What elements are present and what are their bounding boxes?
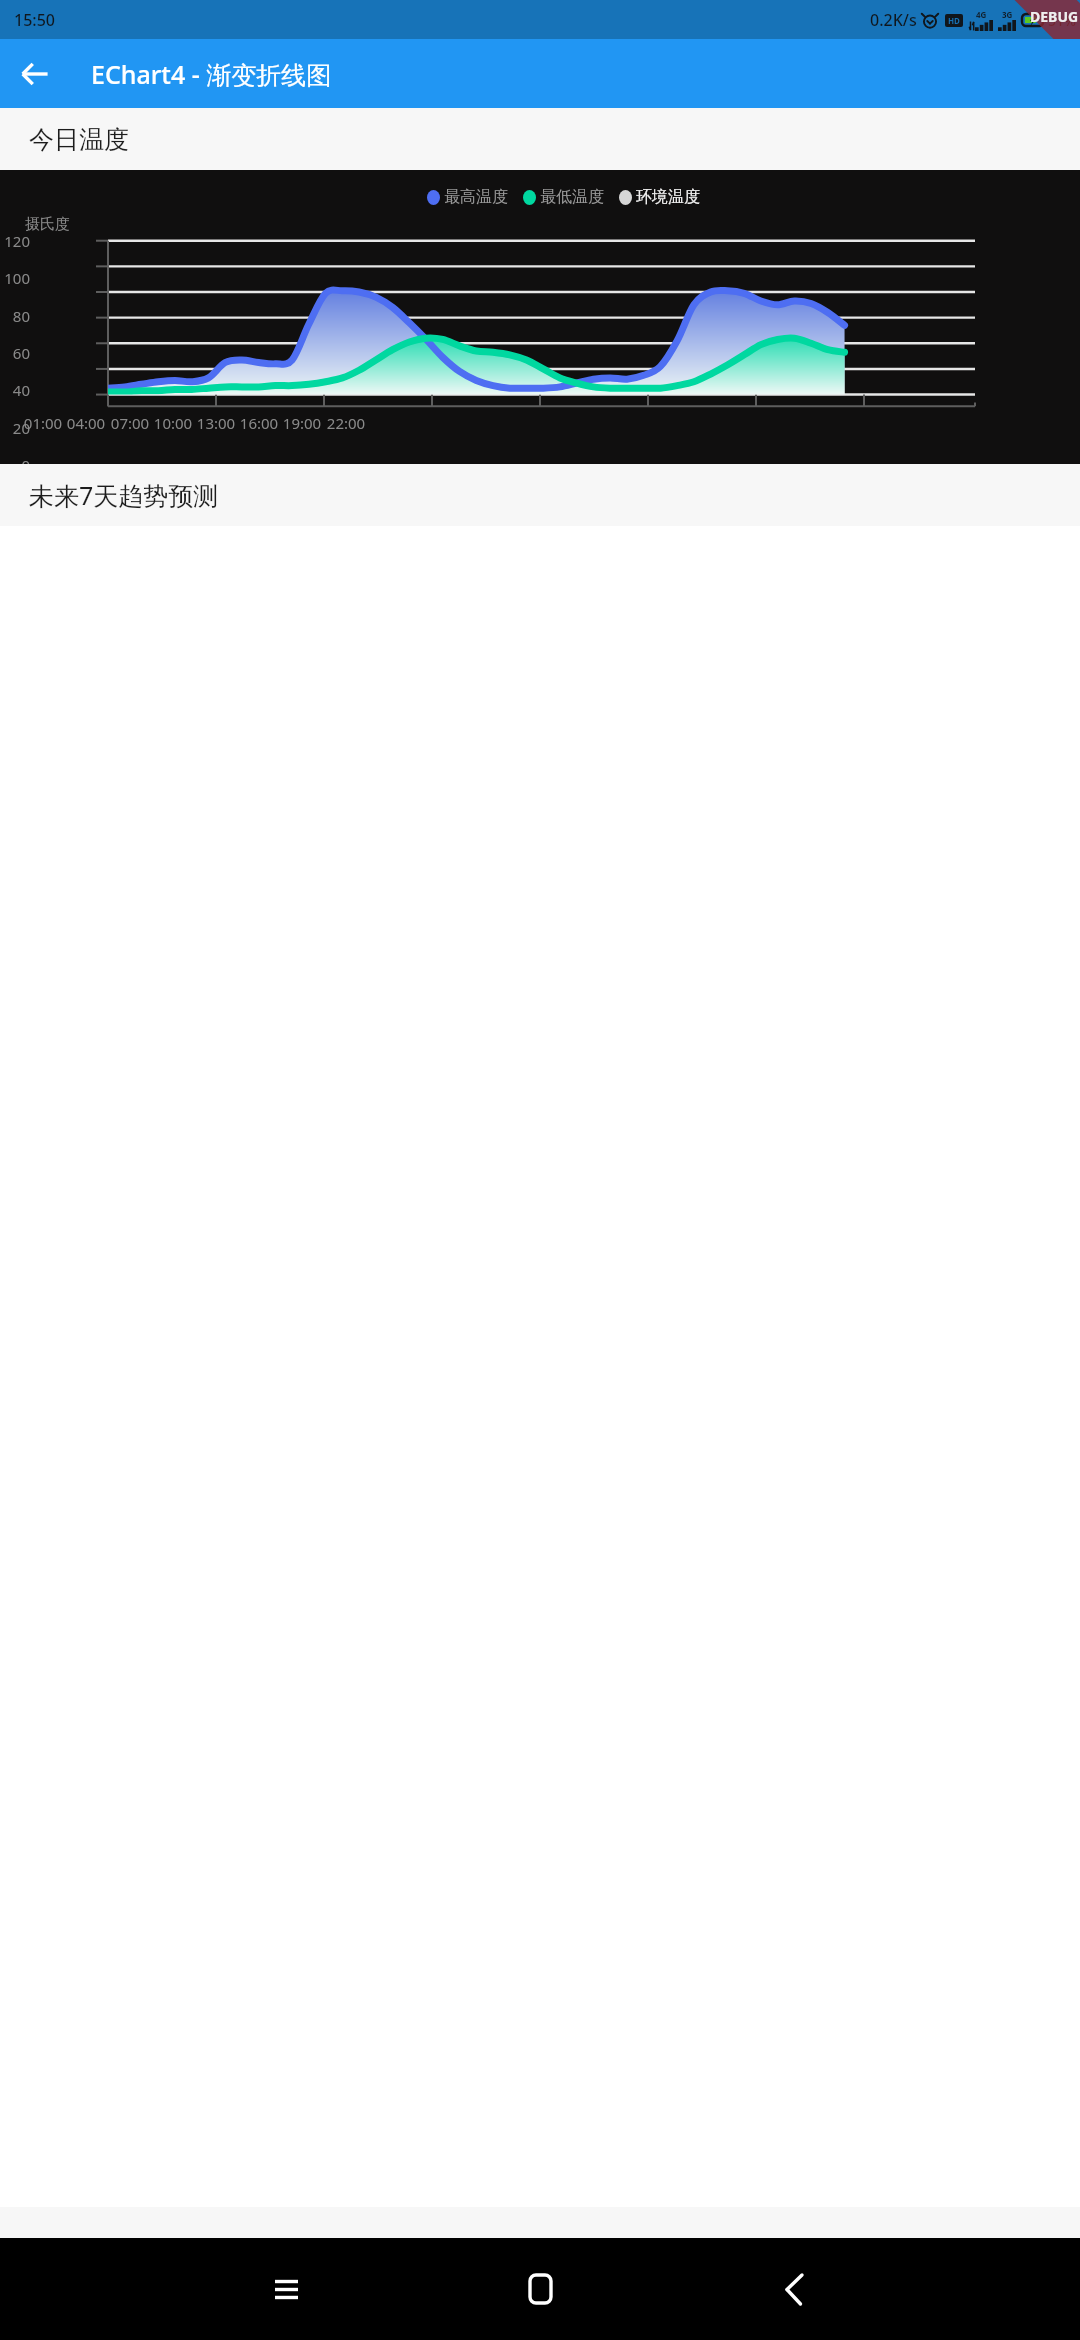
staticText: 未来7天趋势预测 bbox=[29, 478, 219, 512]
staticText: DEBUG bbox=[1030, 7, 1079, 26]
button[interactable]: Recents bbox=[243, 2246, 329, 2332]
staticText: 20 bbox=[0, 418, 30, 438]
staticText: HD bbox=[948, 15, 960, 26]
staticText: 0 bbox=[0, 455, 30, 475]
staticText: 22:00 bbox=[322, 413, 370, 433]
button[interactable]: 环境温度 bbox=[619, 187, 700, 207]
staticText: 13:00 bbox=[192, 413, 240, 433]
staticText: 最低温度 bbox=[540, 187, 604, 207]
staticText: 环境温度 bbox=[636, 187, 700, 207]
staticText: 摄氏度 bbox=[25, 215, 70, 234]
staticText: 今日温度 bbox=[29, 124, 129, 155]
staticText: 4G bbox=[976, 9, 987, 20]
staticText: 100 bbox=[0, 268, 30, 288]
staticText: EChart4 - 渐变折线图 bbox=[91, 57, 332, 91]
button[interactable]: 最低温度 bbox=[523, 187, 604, 207]
button[interactable]: 今日温度 bbox=[0, 108, 1080, 170]
staticText: 15:50 bbox=[14, 9, 55, 31]
staticText: 04:00 bbox=[62, 413, 110, 433]
button[interactable]: Back bbox=[751, 2246, 837, 2332]
button[interactable]: 未来7天趋势预测 bbox=[0, 464, 1080, 526]
staticText: 60 bbox=[0, 343, 30, 363]
staticText: 120 bbox=[0, 231, 30, 251]
staticText: 80 bbox=[0, 306, 30, 326]
staticText: 0.2K/s bbox=[870, 9, 917, 31]
button[interactable]: Back bbox=[6, 45, 64, 103]
staticText: 19:00 bbox=[278, 413, 326, 433]
staticText: 16:00 bbox=[235, 413, 283, 433]
staticText: 07:00 bbox=[106, 413, 154, 433]
staticText: 最高温度 bbox=[444, 187, 508, 207]
button[interactable]: 最高温度 bbox=[427, 187, 508, 207]
staticText: 3G bbox=[1002, 9, 1013, 20]
staticText: 51% bbox=[1048, 11, 1076, 30]
staticText: 01:00 bbox=[19, 413, 67, 433]
staticText: 10:00 bbox=[149, 413, 197, 433]
staticText: 40 bbox=[0, 380, 30, 400]
button[interactable]: Home bbox=[497, 2246, 583, 2332]
